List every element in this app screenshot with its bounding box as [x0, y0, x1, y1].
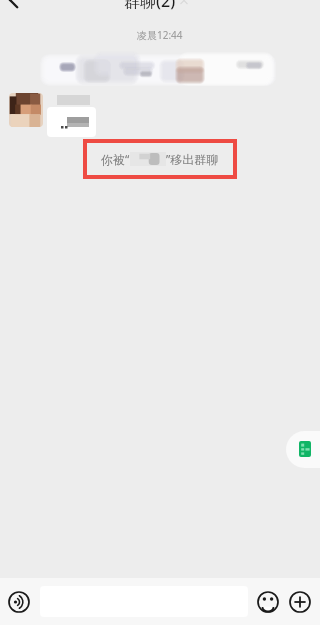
- button[interactable]: Group tools: [286, 431, 320, 468]
- staticText: 凌晨12:44: [137, 28, 183, 42]
- button[interactable]: Voice input: [6, 589, 32, 615]
- button[interactable]: Back: [0, 0, 30, 8]
- button[interactable]: Sender avatar: [9, 93, 43, 127]
- button[interactable]: More: [287, 589, 313, 615]
- staticText: ”移出群聊: [166, 151, 219, 167]
- staticText: 你被“: [101, 151, 130, 167]
- staticText: 群聊(2): [124, 0, 176, 12]
- button[interactable]: [47, 107, 96, 137]
- button[interactable]: Emoji: [255, 589, 281, 615]
- button[interactable]: 你被“: [87, 143, 233, 175]
